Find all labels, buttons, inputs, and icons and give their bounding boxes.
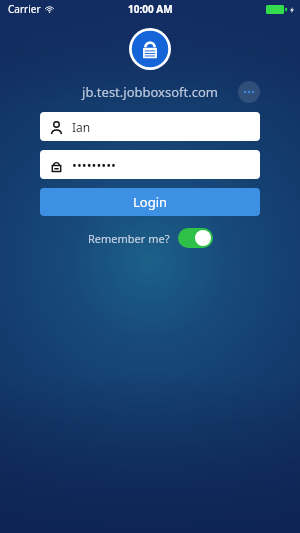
button[interactable]: Login (40, 188, 260, 216)
staticText: Ian (72, 119, 91, 135)
button[interactable]: ••••••••• (40, 150, 260, 179)
staticText: Carrier (8, 2, 41, 16)
button[interactable]: More options (238, 81, 260, 103)
button[interactable]: Ian (40, 112, 260, 141)
staticText: 10:00 AM (128, 2, 173, 16)
staticText: ••••••••• (72, 156, 116, 174)
staticText: jb.test.jobboxsoft.com (82, 83, 218, 101)
button[interactable]: Remember me toggle (178, 228, 213, 248)
staticText: Remember me? (88, 231, 170, 246)
staticText: Login (133, 193, 168, 211)
